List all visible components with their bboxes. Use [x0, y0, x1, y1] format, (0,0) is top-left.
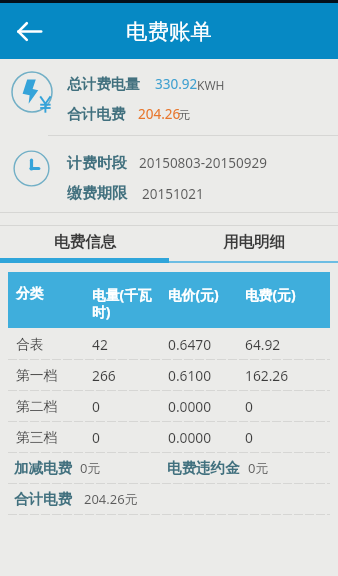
- staticText: 分类: [16, 285, 44, 302]
- staticText: 第一档: [16, 367, 58, 384]
- staticText: 204.26元: [84, 490, 138, 508]
- staticText: 0.6470: [168, 335, 212, 354]
- staticText: 20151021: [142, 185, 204, 203]
- staticText: 电费(元): [245, 285, 296, 304]
- staticText: 330.92: [155, 75, 198, 93]
- staticText: 0: [92, 397, 100, 416]
- button[interactable]: Back: [14, 13, 46, 45]
- staticText: 0: [245, 428, 253, 447]
- staticText: 合计电费: [14, 490, 72, 508]
- staticText: KWH: [197, 77, 225, 93]
- staticText: 元: [178, 107, 190, 122]
- staticText: 用电明细: [223, 232, 285, 252]
- staticText: 电价(元): [168, 285, 219, 304]
- staticText: 0.0000: [168, 397, 212, 416]
- staticText: 合表: [16, 336, 44, 353]
- staticText: 电量(千瓦时): [92, 285, 159, 321]
- staticText: 加减电费: [14, 459, 72, 477]
- staticText: 0.0000: [168, 428, 212, 447]
- staticText: 第三档: [16, 429, 58, 446]
- staticText: 42: [92, 335, 108, 354]
- staticText: 162.26: [245, 366, 289, 385]
- staticText: 电费信息: [54, 232, 116, 252]
- staticText: 缴费期限: [67, 184, 127, 203]
- staticText: 计费时段: [67, 154, 127, 173]
- staticText: 0: [92, 428, 100, 447]
- staticText: 电费违约金: [167, 459, 240, 477]
- staticText: 合计电费: [67, 105, 126, 123]
- staticText: 20150803-20150929: [139, 154, 267, 172]
- staticText: 0.6100: [168, 366, 212, 385]
- staticText: 0元: [80, 459, 101, 477]
- staticText: 64.92: [245, 335, 281, 354]
- staticText: 266: [92, 366, 116, 385]
- staticText: 第二档: [16, 398, 58, 415]
- staticText: 204.26: [138, 105, 181, 123]
- button[interactable]: 电费信息: [0, 226, 169, 258]
- staticText: 电费账单: [126, 18, 212, 45]
- staticText: 总计费电量: [67, 75, 140, 93]
- button[interactable]: 用电明细: [169, 226, 338, 258]
- staticText: 0: [245, 397, 253, 416]
- staticText: 0元: [248, 459, 269, 477]
